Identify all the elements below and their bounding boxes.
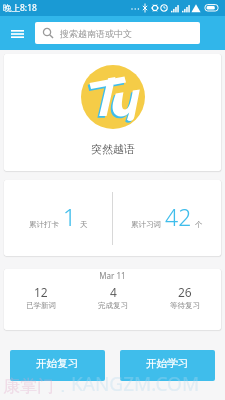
- staticText: 天: [80, 220, 88, 229]
- staticText: 突然越语: [91, 142, 135, 156]
- button[interactable]: Menu: [5, 21, 30, 46]
- staticText: 完成复习: [98, 301, 128, 310]
- staticText: 42: [165, 201, 192, 232]
- staticText: 康掌门: [3, 376, 54, 397]
- staticText: 1: [63, 201, 77, 232]
- staticText: ．: [54, 376, 71, 397]
- staticText: 晚上8:18: [3, 2, 37, 14]
- staticText: 开始复习: [36, 357, 79, 370]
- staticText: 等待复习: [170, 301, 200, 310]
- staticText: 26: [178, 284, 192, 300]
- staticText: Mar 11: [4, 270, 221, 281]
- staticText: 12: [34, 284, 48, 300]
- staticText: 累计习词: [131, 220, 161, 229]
- button[interactable]: 突然越语: [4, 54, 221, 171]
- button[interactable]: 搜索越南语或中文: [35, 22, 200, 44]
- staticText: KANGZM.COM: [71, 371, 200, 397]
- staticText: 开始学习: [146, 357, 189, 370]
- staticText: 个: [195, 220, 203, 229]
- staticText: 搜索越南语或中文: [60, 28, 132, 39]
- button[interactable]: 开始学习: [120, 350, 215, 381]
- staticText: 4: [110, 284, 117, 300]
- staticText: 已学新词: [26, 301, 56, 310]
- button[interactable]: 开始复习: [10, 350, 105, 381]
- staticText: 累计打卡: [29, 220, 59, 229]
